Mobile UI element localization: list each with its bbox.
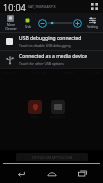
staticText: EXTELECOM.MYTELECOM bbox=[32, 155, 73, 160]
button[interactable]: Connected as a media device bbox=[0, 51, 103, 68]
button[interactable]: Quick settings bbox=[89, 1, 100, 12]
button[interactable]: Back bbox=[11, 164, 31, 183]
button[interactable]: Search bbox=[16, 153, 88, 161]
button[interactable]: USB debugging connected bbox=[0, 33, 103, 50]
staticText: Connected as a media device bbox=[19, 53, 88, 60]
button[interactable]: More Cleaner bbox=[2, 14, 19, 31]
button[interactable]: Maps bbox=[28, 100, 42, 114]
staticText: Setting bbox=[87, 25, 98, 29]
staticText: USB debugging connected bbox=[19, 35, 82, 42]
button[interactable]: Recent apps bbox=[72, 164, 92, 183]
button[interactable]: Increase brightness bbox=[72, 18, 83, 29]
button[interactable]: Settings bbox=[84, 16, 101, 29]
staticText: Touch for other USB options bbox=[19, 61, 64, 66]
staticText: SAT, FEBRUARY 8 bbox=[28, 4, 56, 9]
button[interactable]: Email bbox=[51, 100, 65, 114]
staticText: Usb bbox=[25, 25, 31, 29]
button[interactable]: USB bbox=[19, 16, 36, 29]
staticText: More Cleaner bbox=[5, 23, 17, 31]
staticText: 10:04 bbox=[3, 1, 26, 13]
button[interactable]: Home bbox=[42, 164, 62, 183]
button[interactable]: Decrease brightness bbox=[37, 18, 48, 29]
staticText: Touch to disable USB debugging bbox=[19, 43, 71, 48]
